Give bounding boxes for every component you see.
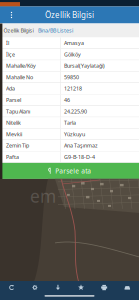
staticText: G9-B-18-D-4 [64,153,95,160]
button[interactable]: Özellik Bilgisi [0,23,37,37]
staticText: Pafta [6,153,19,160]
staticText: 121218 [64,85,82,92]
button[interactable]: Menü [3,6,20,23]
staticText: Gölköy [64,51,81,58]
staticText: Bina/BB Listesi [38,27,73,34]
button[interactable]: Favori [69,281,93,294]
button[interactable]: Yazdır [93,281,116,294]
staticText: 46 [64,96,70,103]
staticText: Ada [6,85,15,92]
staticText: Mevkii [6,131,22,138]
staticText: 59850 [64,74,79,81]
staticText: 24.225,90 [64,108,87,115]
staticText: Nitelik [6,119,21,126]
staticText: Tarla [64,119,76,126]
staticText: İl [6,39,9,46]
button[interactable]: İndir [46,281,69,294]
button[interactable]: Bina/BB Listesi [37,23,74,37]
button[interactable]: Ayarlar [23,281,46,294]
button[interactable]: Parsele ata [0,163,139,179]
staticText: Özellik Bilgisi [3,27,33,34]
staticText: Tapu Alanı [6,108,30,115]
staticText: Ana Taşınmaz [64,142,98,149]
staticText: Özellik Bilgisi [45,10,94,20]
staticText: İlçe [6,51,15,58]
staticText: Amasya [64,39,84,46]
staticText: Bursal(Yaylataği) [64,62,105,69]
staticText: Mahalle No [6,74,33,81]
staticText: Mahalle/Köy [6,62,36,69]
button[interactable]: Yenile [0,281,23,294]
staticText: Zemin Tip [6,142,29,149]
button[interactable]: Araç [116,281,139,294]
staticText: Parsele ata [55,166,91,175]
staticText: Parsel [6,96,21,103]
staticText: em [30,184,56,207]
staticText: Yüzkuyu [64,131,85,138]
